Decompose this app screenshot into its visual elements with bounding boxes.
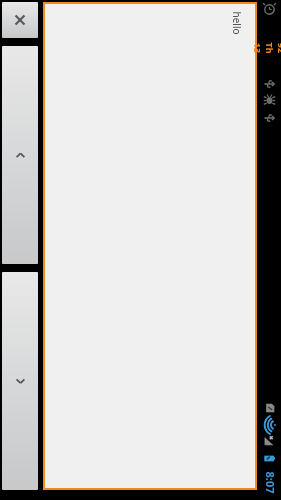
staticText: 8:07 — [262, 471, 277, 493]
staticText: hello — [230, 11, 244, 35]
staticText: 92 Th 13 — [252, 37, 281, 59]
button[interactable]: Close — [2, 2, 38, 38]
button[interactable]: Scroll down — [2, 272, 38, 490]
button[interactable]: Scroll up — [2, 46, 38, 264]
